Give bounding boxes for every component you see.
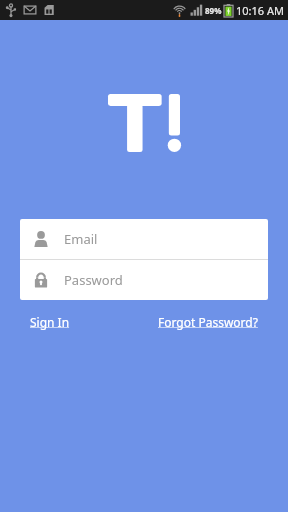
staticText: Email: [64, 230, 98, 248]
button[interactable]: Email: [20, 219, 268, 259]
button[interactable]: Password: [20, 260, 268, 300]
staticText: 10:16 AM: [236, 3, 284, 18]
button[interactable]: Sign In: [20, 310, 80, 334]
button[interactable]: Forgot Password?: [148, 310, 268, 334]
staticText: 89%: [205, 5, 222, 16]
staticText: Password: [64, 271, 123, 289]
staticText: Forgot Password?: [158, 314, 258, 330]
staticText: Sign In: [30, 314, 70, 330]
